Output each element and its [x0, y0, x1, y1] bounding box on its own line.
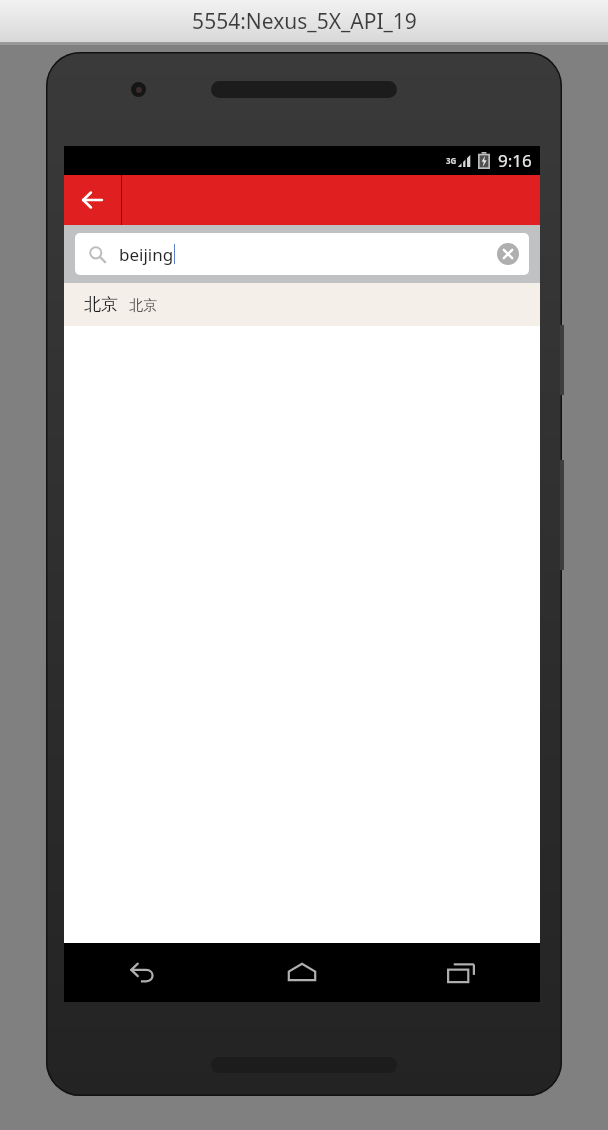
- button[interactable]: Clear search: [489, 235, 527, 273]
- staticText: beijing: [119, 243, 174, 266]
- button[interactable]: Home: [247, 943, 357, 1002]
- staticText: 3G: [446, 155, 457, 166]
- button[interactable]: Recent apps: [406, 943, 516, 1002]
- staticText: 5554:Nexus_5X_API_19: [192, 7, 417, 36]
- button[interactable]: beijing: [75, 233, 529, 275]
- staticText: 9:16: [498, 149, 532, 172]
- staticText: 北京: [84, 294, 118, 315]
- button[interactable]: 北京: [64, 283, 540, 326]
- button[interactable]: Back: [88, 943, 198, 1002]
- button[interactable]: Back: [64, 175, 120, 225]
- staticText: 北京: [129, 297, 157, 315]
